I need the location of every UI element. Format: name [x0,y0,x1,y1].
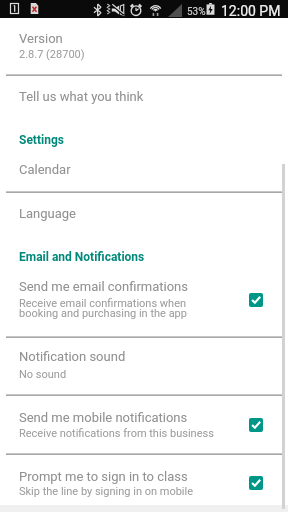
button[interactable]: Version [0,22,288,74]
staticText: Email and Notifications [19,250,145,264]
staticText: Calendar [19,162,71,177]
staticText: booking and purchasing in the app [19,307,187,320]
button[interactable]: Prompt me to sign in to class [0,457,288,503]
button[interactable]: Send me email confirmations [0,272,288,328]
staticText: Language [19,206,76,221]
staticText: Notification sound [19,349,126,364]
button[interactable]: Calendar [0,155,288,189]
button[interactable]: Language [0,195,288,235]
staticText: Settings [19,133,64,147]
staticText: Receive email confirmations when [19,297,187,310]
button[interactable]: Send me email confirmations [249,293,263,307]
staticText: Version [19,31,63,46]
staticText: No sound [19,368,67,381]
button[interactable]: Tell us what you think [0,80,288,110]
staticText: Send me mobile notifications [19,410,188,425]
staticText: 2.8.7 (28700) [19,48,85,61]
staticText: Send me email confirmations [19,279,188,294]
staticText: Skip the line by signing in on mobile [19,485,194,498]
staticText: Tell us what you think [19,89,144,104]
button[interactable]: Send me mobile notifications [249,418,263,432]
staticText: Prompt me to sign in to class [19,469,188,484]
staticText: 53% [187,6,206,18]
button[interactable]: Prompt me to sign in to class [249,476,263,490]
button[interactable]: Notification sound [0,340,288,386]
staticText: Receive notifications from this business [19,427,214,440]
staticText: 12:00 PM [221,3,281,19]
button[interactable]: Send me mobile notifications [0,398,288,444]
